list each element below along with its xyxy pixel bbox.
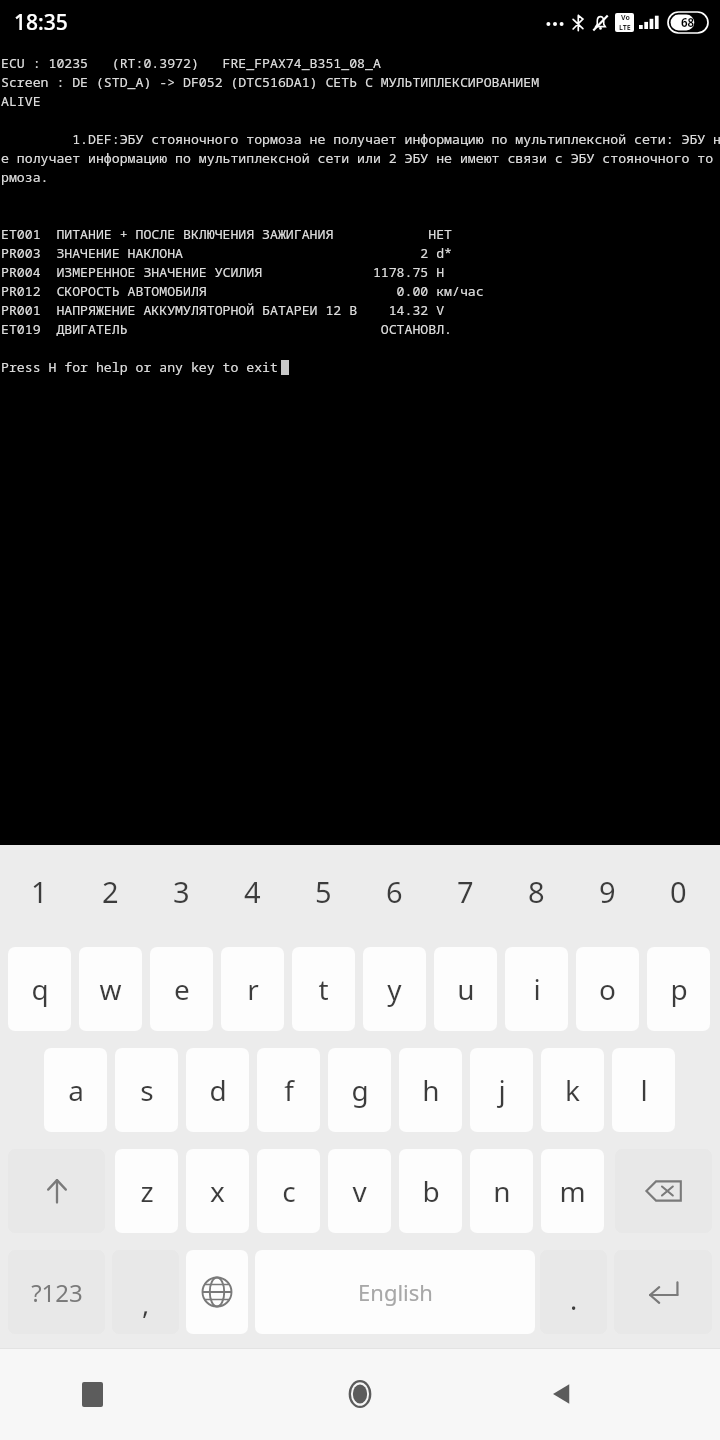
staticText: i (533, 970, 541, 1008)
button[interactable]: h (399, 1048, 462, 1132)
button[interactable]: z (115, 1149, 178, 1233)
staticText: ?123 (31, 1276, 83, 1309)
button[interactable]: 8 (501, 861, 572, 921)
staticText: k (565, 1071, 580, 1109)
staticText: PR004 ИЗМЕРЕННОЕ ЗНАЧЕНИЕ УСИЛИЯ 1178.75… (1, 263, 445, 281)
staticText: ET001 ПИТАНИЕ + ПОСЛЕ ВКЛЮЧЕНИЯ ЗАЖИГАНИ… (1, 225, 453, 243)
staticText: 8 (528, 872, 545, 911)
button[interactable]: 3 (146, 861, 217, 921)
staticText: 0 (670, 872, 687, 911)
staticText: 1 (31, 872, 48, 911)
staticText: g (351, 1071, 369, 1109)
staticText: d (209, 1071, 227, 1109)
button[interactable]: l (612, 1048, 675, 1132)
staticText: l (640, 1071, 648, 1109)
button[interactable]: Comma (112, 1250, 179, 1334)
staticText: o (599, 970, 616, 1008)
button[interactable]: Backspace (615, 1149, 712, 1233)
button[interactable]: 0 (643, 861, 714, 921)
staticText: Screen : DE (STD_A) -> DF052 (DTC516DA1)… (1, 73, 540, 91)
staticText: . (570, 1281, 578, 1318)
button[interactable]: p (647, 947, 710, 1031)
staticText: 18:35 (14, 8, 68, 37)
button[interactable]: g (328, 1048, 391, 1132)
staticText: 7 (457, 872, 474, 911)
staticText: m (559, 1172, 586, 1210)
button[interactable]: 9 (572, 861, 643, 921)
button[interactable]: u (434, 947, 497, 1031)
staticText: y (387, 970, 402, 1008)
button[interactable]: Enter (614, 1250, 712, 1334)
button[interactable]: 7 (430, 861, 501, 921)
button[interactable]: s (115, 1048, 178, 1132)
button[interactable]: e (150, 947, 213, 1031)
button[interactable]: x (186, 1149, 249, 1233)
staticText: z (140, 1172, 154, 1210)
button[interactable]: 5 (288, 861, 359, 921)
button[interactable]: c (257, 1149, 320, 1233)
staticText: p (670, 970, 688, 1008)
button[interactable]: 4 (217, 861, 288, 921)
staticText: x (210, 1172, 225, 1210)
staticText: 68 (681, 15, 695, 31)
staticText: 3 (173, 872, 190, 911)
button[interactable]: Recent apps (0, 1348, 240, 1440)
staticText: ALIVE (1, 92, 41, 110)
button[interactable]: Change keyboard language (186, 1250, 248, 1334)
staticText: 5 (315, 872, 332, 911)
button[interactable]: a (44, 1048, 107, 1132)
button[interactable]: Shift (8, 1149, 105, 1233)
staticText: h (422, 1071, 440, 1109)
staticText: j (498, 1071, 506, 1109)
button[interactable]: m (541, 1149, 604, 1233)
button[interactable]: i (505, 947, 568, 1031)
staticText: n (493, 1172, 511, 1210)
staticText: 4 (244, 872, 261, 911)
staticText: Vo (621, 13, 630, 23)
button[interactable]: y (363, 947, 426, 1031)
staticText: PR001 НАПРЯЖЕНИЕ АККУМУЛЯТОРНОЙ БАТАРЕИ … (1, 301, 445, 319)
button[interactable]: Back (480, 1348, 720, 1440)
button[interactable]: k (541, 1048, 604, 1132)
staticText: 6 (386, 872, 403, 911)
button[interactable]: Period (540, 1250, 607, 1334)
button[interactable]: n (470, 1149, 533, 1233)
staticText: b (422, 1172, 440, 1210)
staticText: u (457, 970, 475, 1008)
button[interactable]: Home (240, 1348, 480, 1440)
staticText: English (358, 1277, 433, 1307)
button[interactable]: q (8, 947, 71, 1031)
staticText: w (99, 970, 122, 1008)
staticText: a (68, 1071, 84, 1109)
staticText: f (284, 1071, 294, 1109)
staticText: t (318, 970, 329, 1008)
button[interactable]: j (470, 1048, 533, 1132)
button[interactable]: d (186, 1048, 249, 1132)
button[interactable]: v (328, 1149, 391, 1233)
button[interactable]: b (399, 1149, 462, 1233)
staticText: Press H for help or any key to exit (1, 358, 278, 376)
staticText: c (282, 1172, 296, 1210)
button[interactable]: r (221, 947, 284, 1031)
button[interactable]: English (255, 1250, 535, 1334)
staticText: LTE (619, 23, 631, 32)
staticText: s (140, 1071, 154, 1109)
button[interactable]: o (576, 947, 639, 1031)
staticText: е получает информацию по мультиплексной … (1, 149, 714, 167)
staticText: 9 (599, 872, 616, 911)
staticText: 1.DEF:ЭБУ стояночного тормоза не получае… (1, 130, 720, 148)
staticText: рмоза. (1, 168, 49, 186)
staticText: ECU : 10235 (RT:0.3972) FRE_FPAX74_B351_… (1, 54, 381, 72)
button[interactable]: f (257, 1048, 320, 1132)
staticText: r (247, 970, 259, 1008)
button[interactable]: w (79, 947, 142, 1031)
staticText: PR012 СКОРОСТЬ АВТОМОБИЛЯ 0.00 км/час (1, 282, 484, 300)
staticText: v (352, 1172, 367, 1210)
button[interactable]: t (292, 947, 355, 1031)
staticText: ET019 ДВИГАТЕЛЬ ОСТАНОВЛ. (1, 320, 453, 338)
button[interactable]: 1 (4, 861, 75, 921)
button[interactable]: 2 (75, 861, 146, 921)
button[interactable]: 6 (359, 861, 430, 921)
staticText: , (142, 1285, 150, 1322)
button[interactable]: ?123 (8, 1250, 105, 1334)
